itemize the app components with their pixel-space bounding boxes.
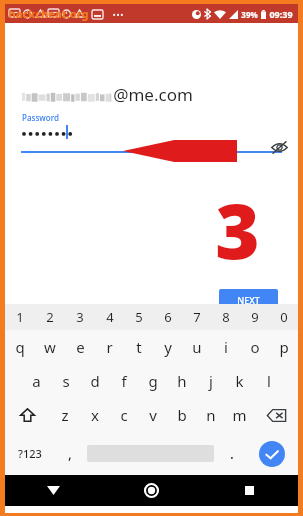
button[interactable]: b	[167, 398, 196, 432]
staticText: t	[136, 337, 142, 357]
button[interactable]: 3	[65, 304, 95, 330]
staticText: 6	[164, 308, 172, 326]
button[interactable]: s	[51, 364, 80, 398]
button[interactable]: a	[21, 364, 51, 398]
staticText: ,	[68, 444, 72, 463]
staticText: z	[61, 405, 69, 425]
staticText: k	[235, 371, 244, 391]
button[interactable]: c	[109, 398, 138, 432]
button[interactable]: z	[50, 398, 80, 432]
button[interactable]: q	[5, 330, 35, 364]
staticText: q	[15, 337, 25, 357]
button[interactable]: Home	[102, 475, 200, 506]
button[interactable]: Show password	[267, 135, 291, 159]
staticText: d	[90, 371, 100, 391]
staticText: g	[148, 371, 158, 391]
button[interactable]: u	[182, 330, 211, 364]
staticText: e	[76, 337, 85, 357]
button[interactable]: .	[217, 432, 246, 475]
button[interactable]: ?123	[5, 432, 55, 475]
staticText: .	[230, 444, 234, 463]
button[interactable]: t	[124, 330, 153, 364]
staticText: b	[177, 405, 187, 425]
staticText: v	[149, 405, 157, 425]
staticText: i	[224, 337, 228, 357]
button[interactable]: y	[153, 330, 182, 364]
button[interactable]: e	[65, 330, 95, 364]
button[interactable]: o	[240, 330, 269, 364]
staticText: c	[120, 405, 128, 425]
button[interactable]: l	[254, 364, 283, 398]
button[interactable]: n	[196, 398, 225, 432]
button[interactable]: p	[269, 330, 298, 364]
staticText: 8	[222, 308, 230, 326]
staticText: w	[44, 337, 56, 357]
button[interactable]: 4	[95, 304, 124, 330]
staticText: u	[192, 337, 202, 357]
staticText: 4	[106, 308, 114, 326]
button[interactable]: v	[138, 398, 167, 432]
staticText: s	[62, 371, 70, 391]
staticText: p	[279, 337, 289, 357]
staticText: h	[177, 371, 187, 391]
button[interactable]: r	[95, 330, 124, 364]
button[interactable]: 9	[240, 304, 269, 330]
button[interactable]: m	[225, 398, 254, 432]
button[interactable]: h	[167, 364, 196, 398]
button[interactable]: Shift	[5, 398, 50, 432]
button[interactable]: Enter	[246, 432, 298, 475]
staticText: hackcheat.org	[8, 6, 89, 21]
staticText: 09:39	[269, 8, 293, 20]
button[interactable]: Hide keyboard	[5, 475, 102, 506]
staticText: 9	[251, 308, 259, 326]
staticText: ?123	[18, 446, 42, 461]
staticText: 7	[193, 308, 201, 326]
button[interactable]: j	[196, 364, 225, 398]
staticText: 2	[46, 308, 54, 326]
button[interactable]: i	[211, 330, 240, 364]
button[interactable]: 5	[124, 304, 153, 330]
staticText: 0	[280, 308, 288, 326]
button[interactable]: g	[138, 364, 167, 398]
staticText: 3	[215, 178, 260, 282]
button[interactable]: w	[35, 330, 65, 364]
staticText: m	[232, 405, 247, 425]
staticText: 5	[135, 308, 143, 326]
button[interactable]: 6	[153, 304, 182, 330]
button[interactable]: NEXT	[219, 289, 278, 310]
staticText: l	[267, 371, 271, 391]
button[interactable]: Backspace	[254, 398, 298, 432]
staticText: 1	[16, 308, 24, 326]
button[interactable]: d	[80, 364, 109, 398]
staticText: Password	[22, 112, 59, 123]
button[interactable]: k	[225, 364, 254, 398]
staticText: y	[164, 337, 172, 357]
staticText: f	[121, 371, 127, 391]
button[interactable]: ,	[55, 432, 84, 475]
staticText: a	[32, 371, 41, 391]
staticText: 3	[76, 308, 84, 326]
button[interactable]: 0	[269, 304, 298, 330]
staticText: o	[250, 337, 260, 357]
button[interactable]: Recent apps	[200, 475, 298, 506]
staticText: @me.com	[113, 83, 193, 106]
staticText: j	[209, 371, 213, 391]
staticText: x	[91, 405, 99, 425]
staticText: NEXT	[237, 294, 260, 306]
staticText: r	[106, 337, 113, 357]
button[interactable]: 2	[35, 304, 65, 330]
button[interactable]: f	[109, 364, 138, 398]
button[interactable]: 1	[5, 304, 35, 330]
button[interactable]: 7	[182, 304, 211, 330]
button[interactable]: x	[80, 398, 109, 432]
staticText: n	[206, 405, 216, 425]
button[interactable]: 8	[211, 304, 240, 330]
staticText: 39%	[241, 9, 258, 20]
